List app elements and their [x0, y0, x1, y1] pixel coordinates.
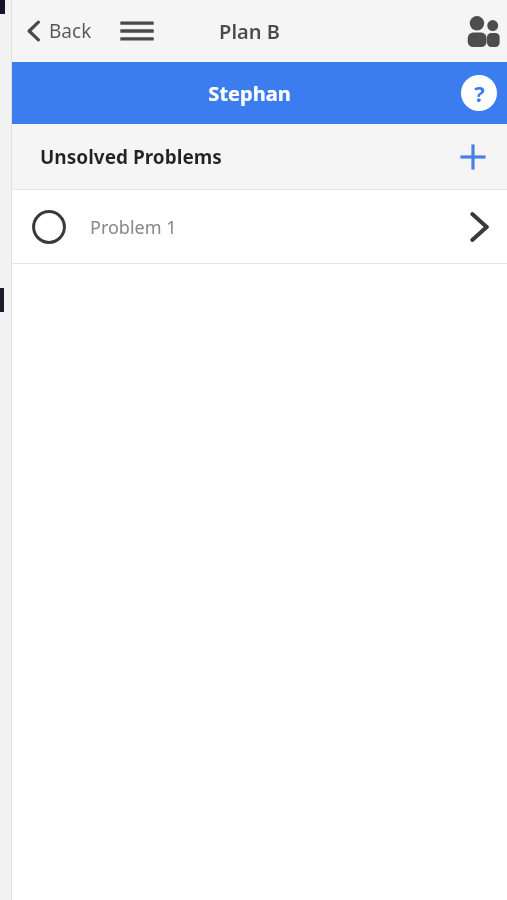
staticText: ?: [474, 78, 485, 108]
button[interactable]: Members: [455, 4, 507, 58]
button[interactable]: Stephan: [12, 62, 507, 124]
button[interactable]: Problem 1: [12, 190, 507, 264]
button[interactable]: Help: [461, 75, 497, 111]
staticText: Problem 1: [90, 215, 177, 240]
button[interactable]: Back: [12, 0, 98, 62]
staticText: Stephan: [208, 80, 291, 107]
staticText: Plan B: [219, 18, 280, 45]
staticText: Unsolved Problems: [40, 144, 222, 170]
button[interactable]: Menu: [116, 10, 158, 52]
staticText: Back: [49, 18, 92, 44]
button[interactable]: Add problem: [451, 135, 495, 179]
